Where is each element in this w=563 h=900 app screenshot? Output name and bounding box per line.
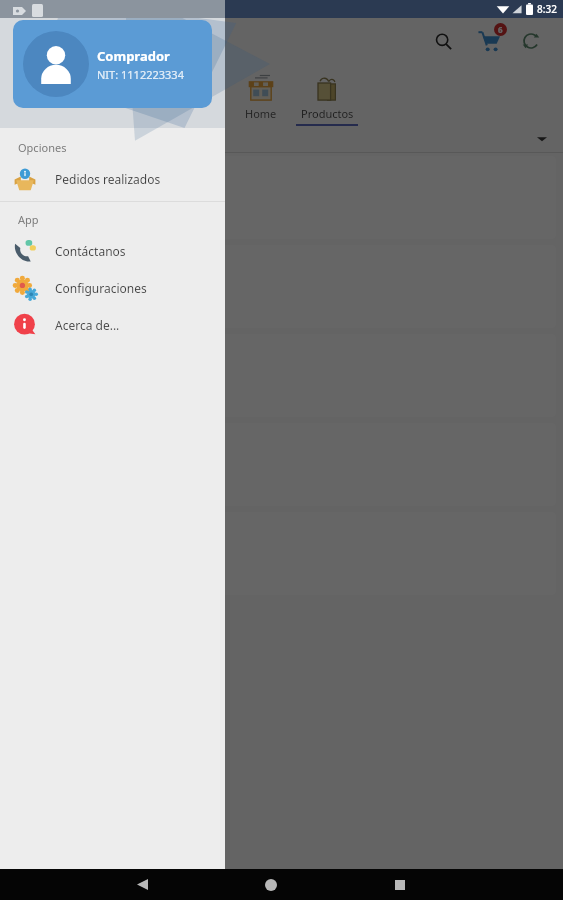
button[interactable]: Contáctanos (0, 232, 225, 269)
staticText: Opciones (18, 140, 67, 155)
button[interactable]: Carrito (469, 21, 509, 61)
button[interactable]: Acerca de... (0, 306, 225, 343)
staticText: 8:32 (537, 2, 557, 16)
staticText: NIT: 1112223334 (97, 67, 184, 82)
staticText: Home (245, 106, 277, 121)
staticText: Comprador tarjetas (97, 47, 212, 65)
button[interactable]: Configuraciones (0, 269, 225, 306)
staticText: App (18, 212, 39, 227)
staticText: Pedidos realizados (55, 171, 161, 187)
staticText: Contáctanos (55, 243, 126, 259)
staticText: Acerca de... (55, 317, 120, 333)
button[interactable]: Tarjeta IVA 10 (7, 156, 556, 239)
staticText: Productos (301, 106, 354, 121)
button[interactable]: Inicio (251, 869, 291, 900)
staticText: Tarjeta IVA 10 (92, 166, 176, 184)
button[interactable]: Tarjeta IVA 20 (7, 245, 556, 328)
button[interactable]: Tarjeta Iva 80 (7, 512, 556, 595)
staticText: 6 (498, 24, 503, 35)
button[interactable]: Pedidos realizados (0, 160, 225, 197)
staticText: $17,940 (92, 277, 137, 293)
staticText: Tarjeta IVA 20 (92, 255, 176, 273)
button[interactable]: Comprador tarjetas (13, 20, 212, 108)
button[interactable]: Tarjeta Iva 50 (7, 423, 556, 506)
button[interactable]: Tarjeta IVA 30 (7, 334, 556, 417)
button[interactable]: Home (228, 64, 294, 126)
staticText: $17,940 (92, 188, 137, 204)
button[interactable]: Atrás (122, 869, 162, 900)
button[interactable]: Productos (294, 64, 360, 126)
button[interactable]: Recientes (380, 869, 420, 900)
button[interactable]: Actualizar (513, 23, 549, 59)
button[interactable] (0, 126, 563, 152)
button[interactable]: Buscar (425, 23, 461, 59)
staticText: Configuraciones (55, 280, 147, 296)
